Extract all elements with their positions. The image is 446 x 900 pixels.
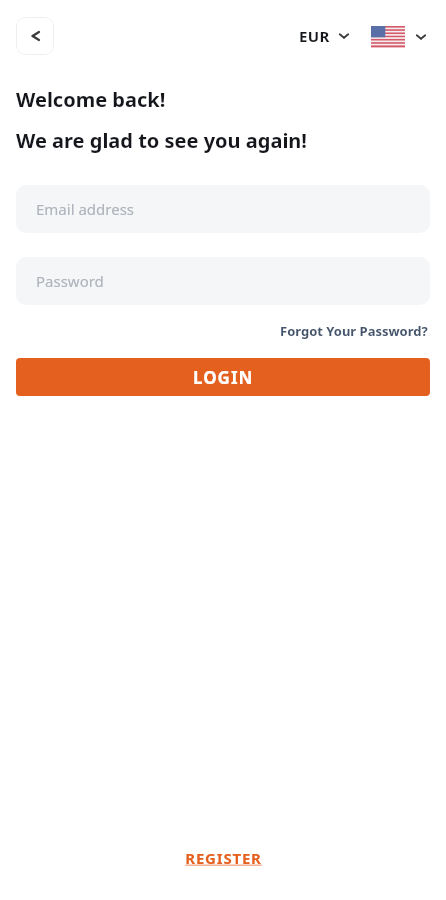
staticText: REGISTER [185,848,262,868]
button[interactable]: Password [16,257,430,305]
button[interactable]: Select language [369,20,430,53]
staticText: Email address [36,199,135,219]
button[interactable]: REGISTER [179,844,268,872]
button[interactable]: EUR [295,20,355,52]
button[interactable]: Forgot Your Password? [278,319,430,343]
button[interactable]: LOGIN [16,358,430,396]
staticText: Welcome back! [16,86,166,113]
staticText: Forgot Your Password? [280,322,428,340]
staticText: EUR [299,26,330,46]
staticText: LOGIN [193,366,254,389]
button[interactable]: Email address [16,185,430,233]
staticText: We are glad to see you again! [16,127,307,154]
staticText: Password [36,271,104,291]
button[interactable]: Back [16,17,54,55]
